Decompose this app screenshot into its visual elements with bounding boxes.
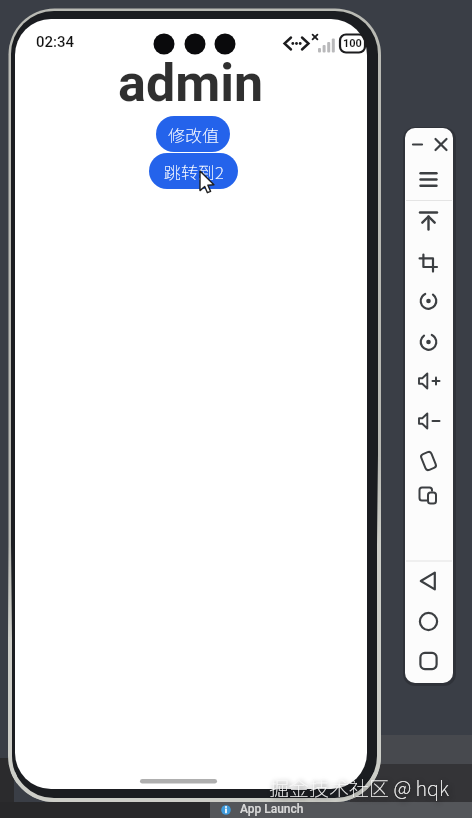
button[interactable]: [410, 364, 447, 398]
button[interactable]: [410, 644, 447, 678]
button[interactable]: [410, 564, 447, 598]
button[interactable]: 修改值: [156, 116, 230, 152]
button[interactable]: [410, 162, 447, 196]
button[interactable]: [410, 325, 447, 359]
staticText: admin: [118, 53, 264, 114]
button[interactable]: [410, 284, 447, 318]
button[interactable]: [410, 204, 447, 238]
button[interactable]: [410, 404, 447, 438]
staticText: App Launch: [240, 802, 304, 816]
button[interactable]: [410, 604, 447, 638]
button[interactable]: [410, 246, 447, 280]
button[interactable]: [410, 444, 447, 478]
staticText: 02:34: [36, 33, 75, 51]
button[interactable]: [429, 131, 452, 157]
staticText: 修改值: [168, 122, 219, 147]
button[interactable]: [210, 802, 472, 818]
staticText: 100: [343, 37, 362, 50]
staticText: 跳转到2: [164, 159, 224, 184]
button[interactable]: [406, 131, 428, 157]
staticText: 掘金技术社区 @ hqk: [269, 773, 449, 802]
button[interactable]: 跳转到2: [149, 153, 238, 189]
button[interactable]: [410, 481, 447, 515]
